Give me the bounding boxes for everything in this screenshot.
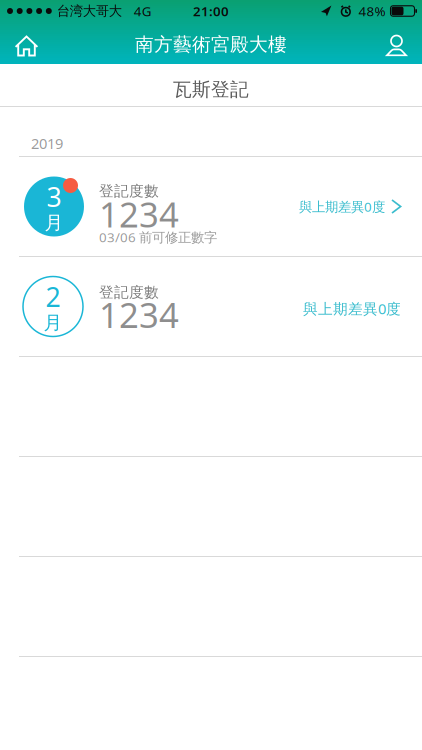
staticText: 03/06 前可修正數字 [99, 228, 217, 246]
staticText: 與上期差異0度 [299, 198, 385, 215]
staticText: 登記度數 [99, 283, 159, 301]
button[interactable]: 3 [0, 157, 422, 257]
staticText: 1234 [99, 291, 179, 337]
staticText: 3 [46, 179, 61, 214]
staticText: 1234 [99, 191, 179, 237]
staticText: 瓦斯登記 [173, 78, 249, 101]
staticText: 2 [45, 279, 60, 314]
staticText: 月 [43, 311, 62, 334]
staticText: 登記度數 [99, 182, 159, 200]
staticText: 4G [134, 2, 152, 20]
staticText: 與上期差異0度 [303, 299, 401, 318]
button[interactable]: Profile [386, 29, 422, 56]
staticText: 2019 [31, 133, 63, 153]
button[interactable]: 2 [0, 257, 422, 357]
staticText: 21:00 [193, 2, 229, 20]
button[interactable]: Home [0, 29, 38, 56]
staticText: 台湾大哥大 [57, 3, 122, 19]
staticText: 月 [44, 211, 63, 234]
staticText: 南方藝術宮殿大樓 [135, 33, 287, 56]
staticText: 48% [358, 2, 385, 20]
